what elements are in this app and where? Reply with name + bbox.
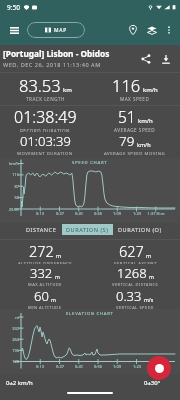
staticText: 51 xyxy=(118,106,136,127)
staticText: VERTICAL ASCENT xyxy=(114,261,157,264)
staticText: 0:27 xyxy=(51,364,69,369)
staticText: 87 xyxy=(0,184,19,189)
staticText: m xyxy=(56,252,62,259)
staticText: 196 xyxy=(0,348,19,353)
staticText: 0:41 xyxy=(70,211,88,216)
staticText: 1:09 xyxy=(108,211,126,216)
staticText: [Portugal] Lisbon - Obidos xyxy=(3,48,110,59)
staticText: 116 xyxy=(112,74,141,96)
staticText: 58 xyxy=(0,195,19,200)
staticText: TRACK LENGTH xyxy=(26,96,65,102)
staticText: 1:23 xyxy=(128,211,146,216)
staticText: 1:23 xyxy=(128,364,146,369)
staticText: m xyxy=(146,252,152,259)
staticText: 01:38:49 xyxy=(14,106,77,128)
staticText: 116 xyxy=(0,172,19,177)
staticText: 128 xyxy=(0,359,19,364)
button[interactable]: Layers xyxy=(142,20,161,39)
button[interactable]: Share xyxy=(136,49,156,69)
staticText: m xyxy=(51,296,56,303)
staticText: WED, DEC 26, 2018 11:13:40 AM xyxy=(3,61,101,69)
staticText: 0.33 xyxy=(116,287,142,305)
staticText: 1268 xyxy=(117,264,147,282)
staticText: MAP xyxy=(54,27,67,34)
staticText: km/h xyxy=(0,161,19,166)
staticText: 0:13 xyxy=(31,211,49,216)
staticText: 1:09 xyxy=(108,364,126,369)
staticText: VERTICAL DISTANCE xyxy=(112,282,159,287)
staticText: 0:27 xyxy=(51,211,69,216)
staticText: 1:37 H:m xyxy=(147,211,165,216)
button[interactable]: DISTANCE xyxy=(26,224,57,235)
staticText: DURATION (S) xyxy=(66,226,109,234)
staticText: MIN ALTITUDE xyxy=(28,305,62,309)
staticText: MAX SPEED xyxy=(120,96,150,102)
staticText: 0:55 xyxy=(89,211,107,216)
staticText: ELEVATION CHART xyxy=(66,310,114,316)
staticText: 79 xyxy=(119,132,135,150)
staticText: DISTANCE xyxy=(26,226,57,234)
staticText: DURATION (O) xyxy=(118,226,162,234)
staticText: 01:03:39 xyxy=(20,132,71,150)
staticText: 0±30° xyxy=(144,379,161,387)
staticText: m xyxy=(0,315,19,320)
staticText: AVERAGE SPEED xyxy=(114,127,156,132)
staticText: km/h xyxy=(138,117,153,125)
staticText: 0±2 km/h xyxy=(6,379,33,387)
staticText: VERTICAL SPEED xyxy=(116,305,154,309)
button[interactable]: Menu xyxy=(4,20,24,40)
staticText: 9:50 xyxy=(7,3,20,12)
staticText: 332 xyxy=(30,264,53,282)
button[interactable]: DURATION (S) xyxy=(66,224,109,235)
staticText: 0:41 xyxy=(70,364,88,369)
button[interactable]: Record xyxy=(147,356,171,380)
staticText: m/s xyxy=(144,296,154,303)
staticText: 332 xyxy=(0,326,19,331)
staticText: AVERAGE SPEED MOVING xyxy=(104,150,166,156)
button[interactable]: MAP xyxy=(27,22,85,38)
button[interactable]: More options xyxy=(161,22,177,38)
staticText: 264 xyxy=(0,337,19,342)
staticText: MAX ALTITUDE xyxy=(28,282,63,287)
staticText: 60 xyxy=(34,287,49,305)
staticText: SPEED CHART xyxy=(72,159,108,165)
button[interactable]: Location xyxy=(123,20,142,39)
staticText: 627 xyxy=(119,241,144,261)
staticText: 0:13 xyxy=(31,364,49,369)
staticText: ALTITUDE DIFFERENCE xyxy=(18,261,73,264)
button[interactable]: Download xyxy=(156,49,176,69)
staticText: 0:55 xyxy=(89,364,107,369)
staticText: m xyxy=(55,273,60,280)
staticText: km/h xyxy=(143,86,158,94)
staticText: 1:37 H:m xyxy=(147,364,165,369)
staticText: m xyxy=(149,273,154,280)
staticText: MOVEMENT DURATION xyxy=(17,150,73,156)
button[interactable]: DURATION (O) xyxy=(118,224,162,235)
staticText: RECORD DURATION xyxy=(20,128,71,132)
staticText: km/h xyxy=(137,141,151,148)
staticText: 29.01 xyxy=(0,207,19,212)
staticText: km xyxy=(63,86,72,94)
staticText: 272 xyxy=(29,241,54,261)
staticText: 83.53 xyxy=(19,74,61,96)
